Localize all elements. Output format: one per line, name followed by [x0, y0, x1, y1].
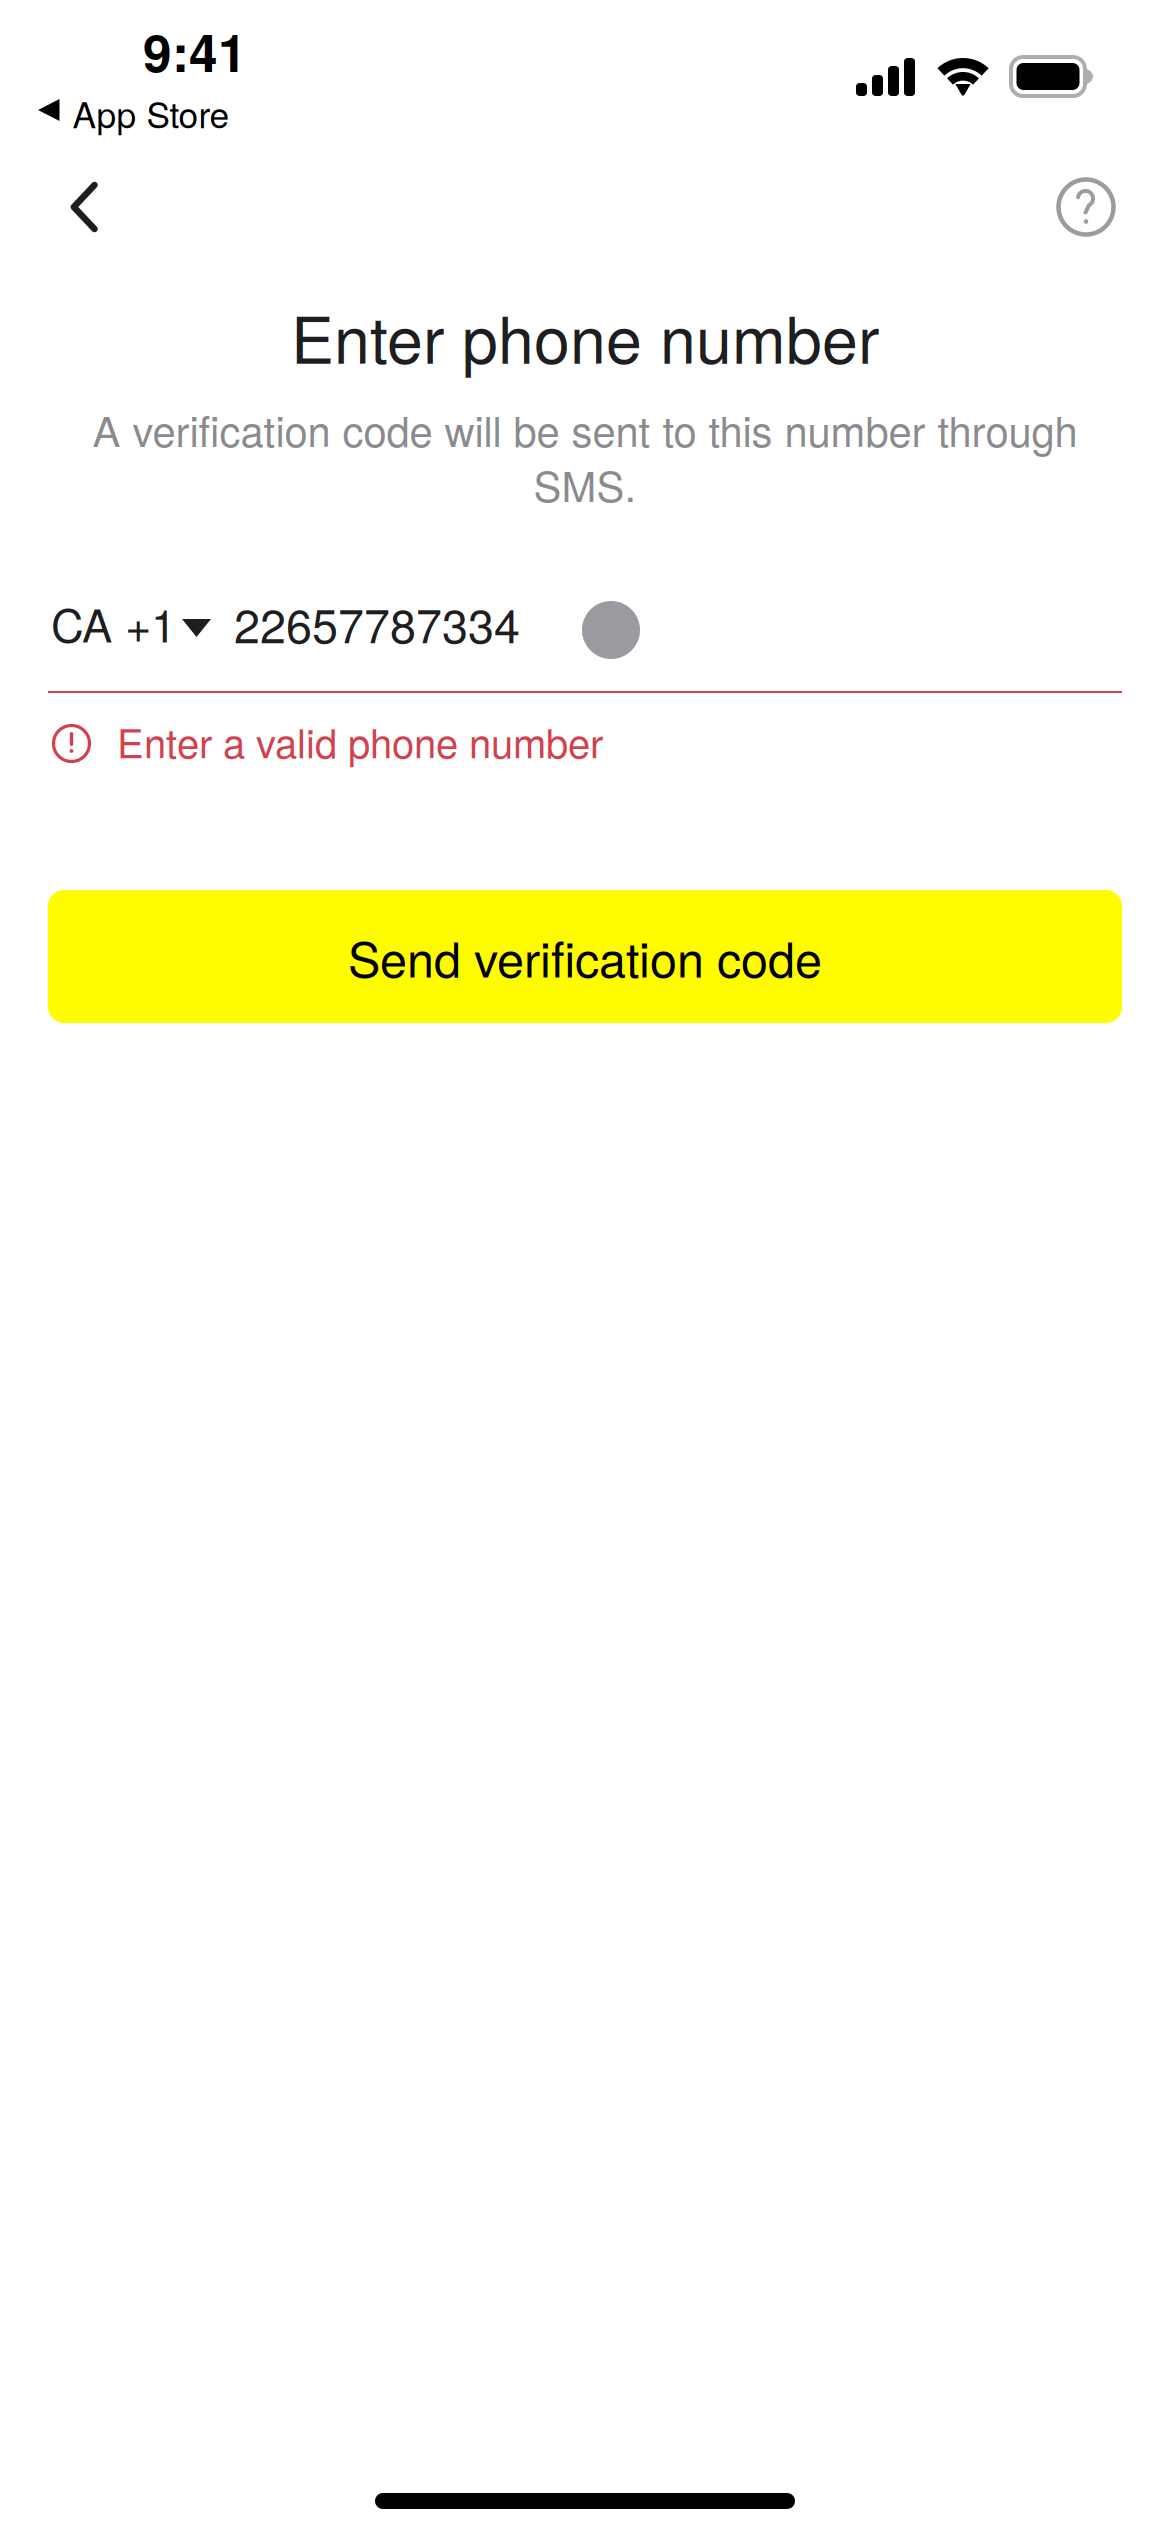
staticText: CA +1: [51, 590, 176, 655]
staticText: A verification code will be sent to this…: [92, 399, 1077, 459]
button[interactable]: App Store: [38, 93, 278, 133]
staticText: App Store: [72, 88, 229, 138]
button[interactable]: Country code CA +1: [51, 594, 211, 652]
staticText: Enter a valid phone number: [117, 712, 603, 770]
button[interactable]: Help: [1036, 157, 1136, 257]
staticText: Send verification code: [348, 922, 822, 991]
staticText: SMS.: [533, 454, 636, 514]
staticText: 9:41: [143, 14, 247, 88]
button[interactable]: Back: [34, 157, 134, 257]
button[interactable]: Send verification code: [48, 890, 1122, 1023]
staticText: 22657787334: [234, 590, 520, 656]
staticText: Enter phone number: [291, 290, 879, 382]
